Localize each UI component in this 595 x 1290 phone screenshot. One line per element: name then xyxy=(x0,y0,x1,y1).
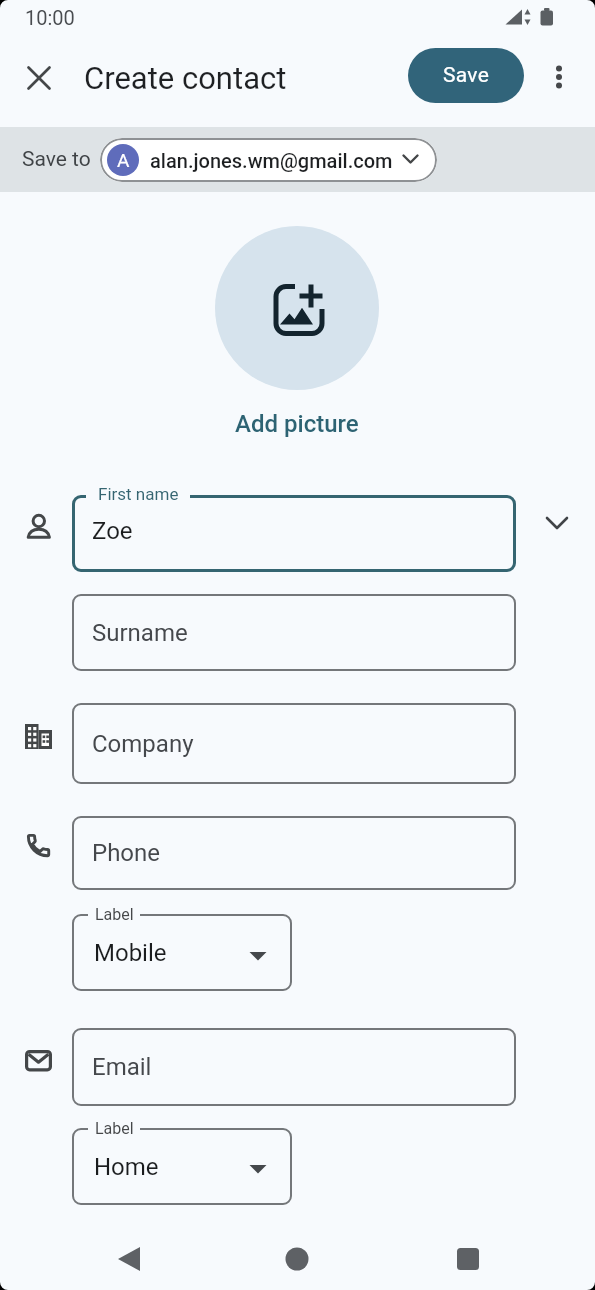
button[interactable]: Home xyxy=(72,1128,292,1205)
button[interactable]: A xyxy=(100,138,437,182)
button[interactable] xyxy=(215,226,379,390)
button[interactable] xyxy=(444,1235,492,1283)
button[interactable]: Save xyxy=(408,48,524,103)
staticText: alan.jones.wm@gmail.com xyxy=(150,149,393,172)
button[interactable] xyxy=(15,54,63,102)
staticText: Zoe xyxy=(92,517,133,545)
staticText: Label xyxy=(95,1119,134,1137)
button[interactable] xyxy=(533,499,581,547)
button[interactable]: Company xyxy=(72,703,516,784)
button[interactable]: Phone xyxy=(72,816,516,890)
staticText: Label xyxy=(95,905,134,923)
staticText: A xyxy=(117,149,130,171)
button[interactable]: Surname xyxy=(72,594,516,671)
staticText: Email xyxy=(92,1053,152,1081)
staticText: Mobile xyxy=(94,939,167,967)
button[interactable] xyxy=(105,1235,153,1283)
staticText: Home xyxy=(94,1153,159,1181)
staticText: First name xyxy=(98,484,179,504)
button[interactable] xyxy=(273,1235,321,1283)
button[interactable]: Add picture xyxy=(197,408,397,440)
staticText: Surname xyxy=(92,619,188,647)
staticText: 10:00 xyxy=(25,6,75,29)
staticText: Create contact xyxy=(84,60,287,96)
staticText: Save xyxy=(443,63,490,88)
staticText: Company xyxy=(92,730,194,758)
button[interactable] xyxy=(535,53,583,101)
staticText: Add picture xyxy=(235,410,359,438)
staticText: Phone xyxy=(92,839,161,867)
button[interactable]: Zoe xyxy=(72,495,516,572)
button[interactable]: Email xyxy=(72,1028,516,1106)
button[interactable]: Mobile xyxy=(72,914,292,991)
staticText: Save to xyxy=(22,147,91,172)
